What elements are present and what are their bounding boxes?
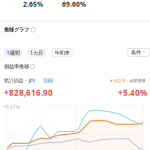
staticText: +8.47% (2, 103, 19, 110)
button[interactable]: 1週間 (4, 49, 22, 57)
staticText: 推移グラフ (4, 26, 29, 33)
staticText: +828,616.90 (4, 87, 53, 98)
staticText: +5.40% (118, 87, 147, 98)
staticText: 1週間 (6, 49, 19, 56)
staticText: ・ (125, 78, 129, 83)
staticText: 累計損益・JPY (3, 77, 35, 84)
staticText: 2.65% (23, 0, 43, 9)
staticText: ・ (145, 78, 149, 83)
button[interactable]: 条件 (127, 48, 149, 56)
button[interactable]: 1カ月 (28, 49, 46, 57)
staticText: ⌃ (142, 50, 145, 55)
staticText: 1カ月 (30, 49, 43, 56)
button[interactable]: 詳細 (35, 78, 52, 84)
staticText: 詳細 (42, 77, 52, 84)
button[interactable]: 年初来 (52, 49, 72, 57)
staticText: 損益率 (113, 78, 125, 83)
staticText: 金額推移 (129, 78, 145, 83)
staticText: 年初来 (54, 49, 69, 56)
staticText: 条件 (131, 49, 141, 56)
staticText: 損益率推移 (4, 63, 29, 70)
staticText: 69.60% (62, 0, 86, 9)
